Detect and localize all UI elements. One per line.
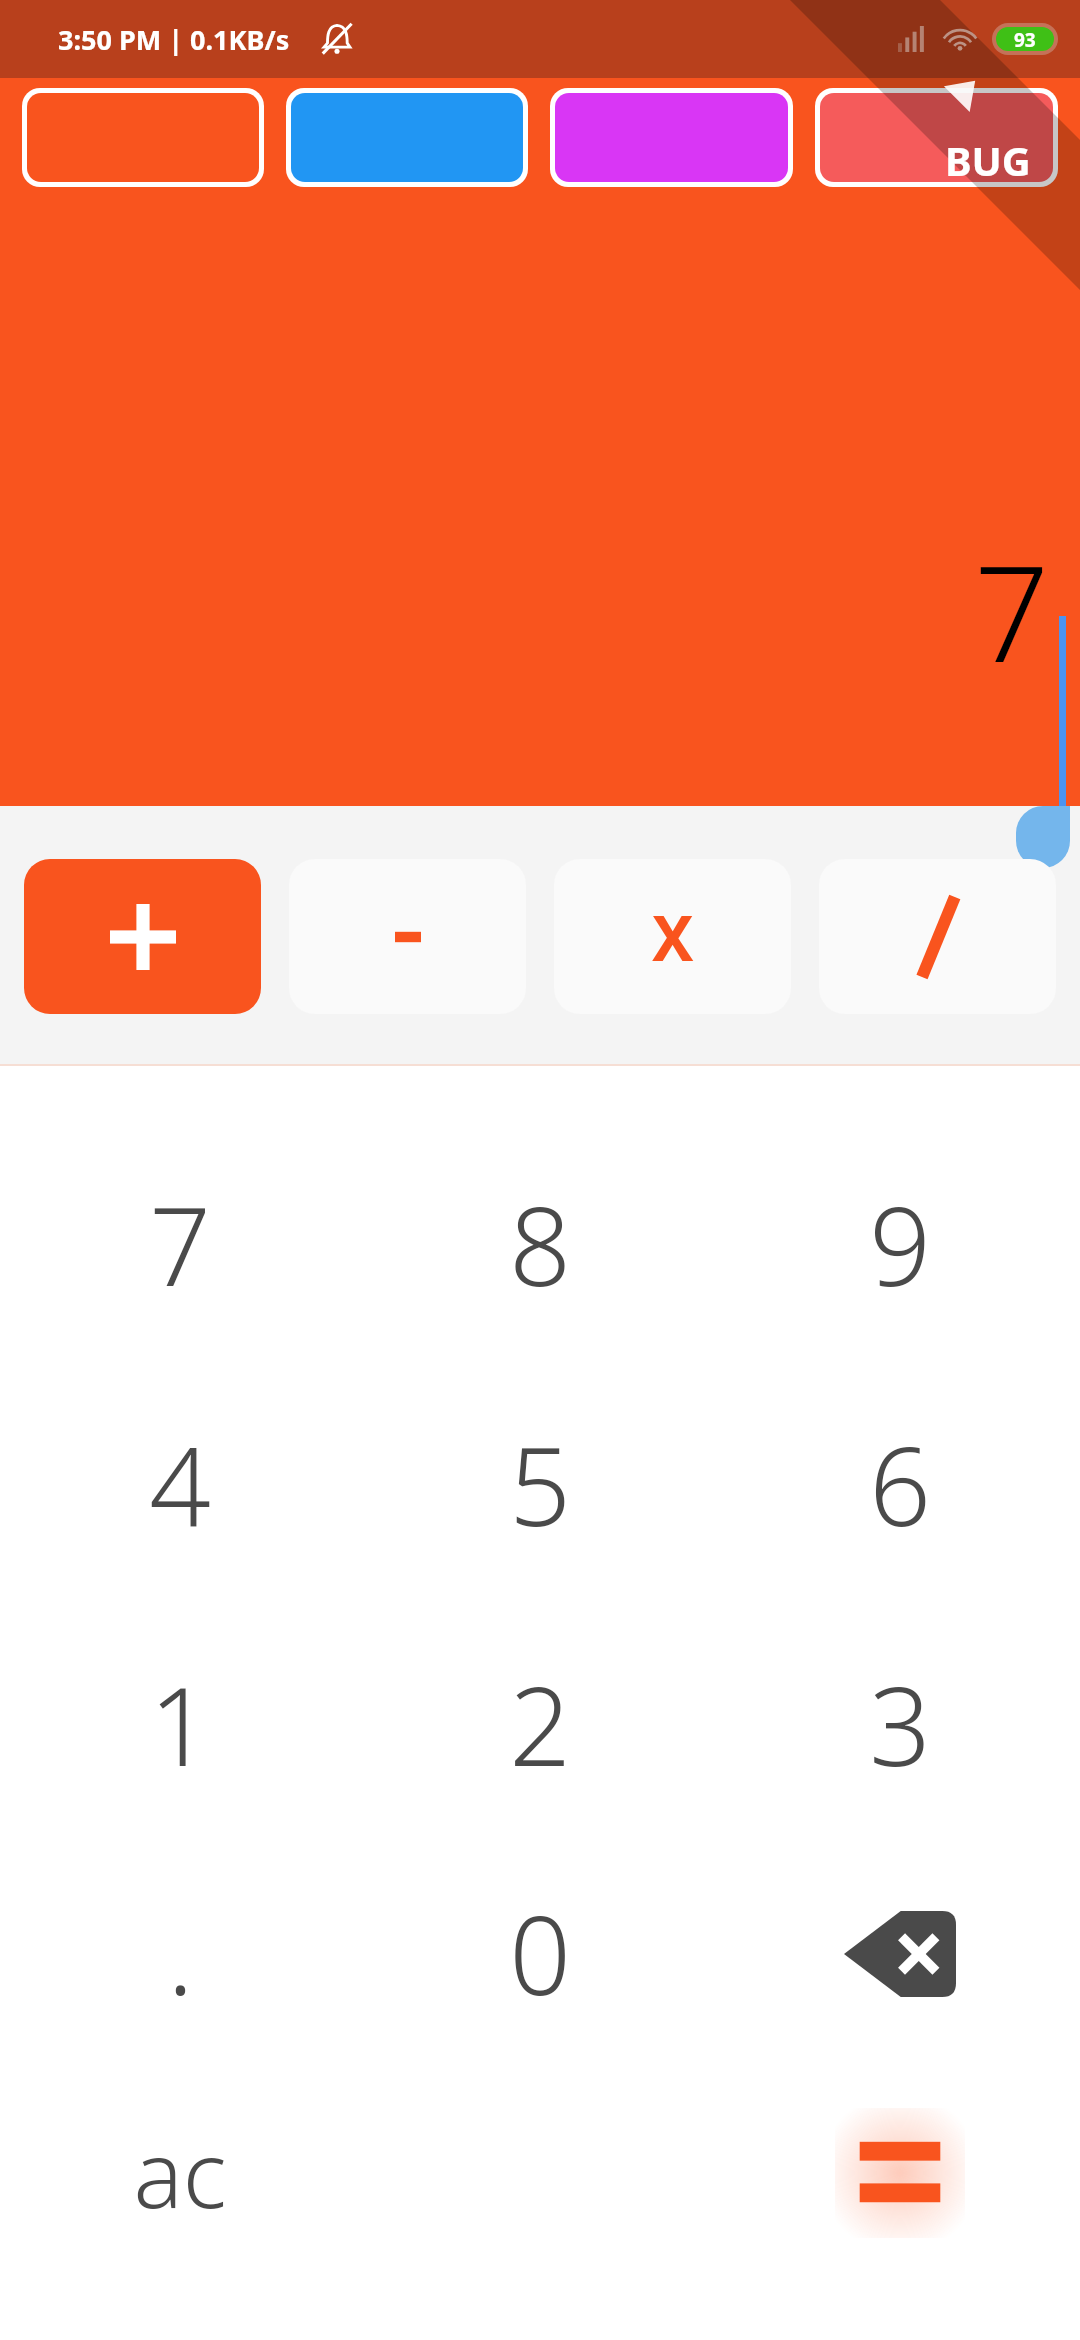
button[interactable]: ac xyxy=(0,2063,360,2282)
button[interactable]: 0 xyxy=(360,1844,720,2063)
button[interactable]: Backspace xyxy=(720,1844,1080,2063)
button[interactable]: 2 xyxy=(360,1604,720,1844)
button[interactable]: . xyxy=(0,1844,360,2063)
button[interactable]: 7 xyxy=(0,1124,360,1364)
button[interactable]: 3 xyxy=(720,1604,1080,1844)
staticText: 2 xyxy=(509,1651,571,1798)
staticText: BUG xyxy=(945,133,1031,187)
button[interactable]: 1 xyxy=(0,1604,360,1844)
button[interactable]: Theme colour xyxy=(27,93,259,182)
staticText: 1 xyxy=(149,1651,211,1798)
button[interactable]: 9 xyxy=(720,1124,1080,1364)
staticText: 4 xyxy=(149,1411,211,1558)
button[interactable]: X xyxy=(554,859,791,1014)
staticText: . xyxy=(167,1880,194,2027)
staticText: 9 xyxy=(869,1171,931,1318)
button[interactable]: Theme colour xyxy=(820,93,1053,182)
button[interactable]: 8 xyxy=(360,1124,720,1364)
button[interactable]: 5 xyxy=(360,1364,720,1604)
button[interactable]: Theme colour xyxy=(555,93,788,182)
button[interactable]: 4 xyxy=(0,1364,360,1604)
staticText: 6 xyxy=(869,1411,931,1558)
staticText: 3:50 PM | 0.1KB/s xyxy=(58,21,290,58)
button[interactable] xyxy=(289,859,526,1014)
staticText: 3 xyxy=(869,1651,931,1798)
button[interactable] xyxy=(24,859,261,1014)
staticText: ac xyxy=(133,2110,227,2235)
staticText: 8 xyxy=(509,1171,571,1318)
staticText: 7 xyxy=(974,521,1050,701)
staticText: 0 xyxy=(509,1880,571,2027)
staticText: 5 xyxy=(509,1411,571,1558)
button[interactable]: Equals xyxy=(720,2063,1080,2282)
button[interactable] xyxy=(819,859,1056,1014)
staticText: 93 xyxy=(1014,27,1036,51)
staticText: 7 xyxy=(149,1171,211,1318)
staticText: X xyxy=(652,895,694,979)
button[interactable]: 6 xyxy=(720,1364,1080,1604)
button[interactable]: Theme colour xyxy=(291,93,523,182)
